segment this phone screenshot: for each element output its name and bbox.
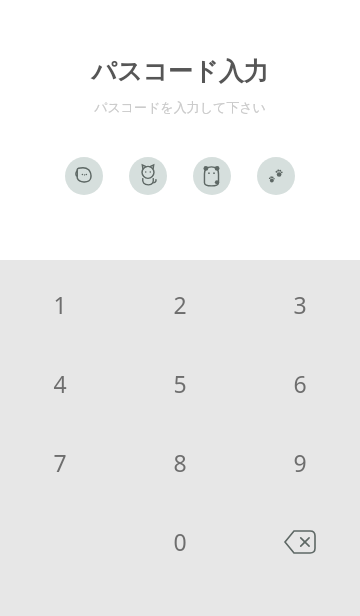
button[interactable]: 0 bbox=[120, 502, 240, 581]
button[interactable]: 8 bbox=[120, 423, 240, 502]
staticText: 6 bbox=[293, 368, 307, 399]
button[interactable]: 7 bbox=[0, 423, 120, 502]
button[interactable]: 6 bbox=[240, 344, 360, 423]
staticText: 8 bbox=[173, 447, 187, 478]
button[interactable]: 3 bbox=[240, 265, 360, 344]
button[interactable]: 9 bbox=[240, 423, 360, 502]
staticText: 9 bbox=[293, 447, 307, 478]
button[interactable]: Backspace bbox=[240, 502, 360, 581]
button[interactable]: Passcode slot 4 bbox=[257, 157, 295, 195]
button[interactable]: 2 bbox=[120, 265, 240, 344]
button[interactable]: Passcode slot 2 bbox=[129, 157, 167, 195]
staticText: 4 bbox=[53, 368, 67, 399]
staticText: パスコードを入力して下さい bbox=[94, 99, 266, 115]
button[interactable]: 1 bbox=[0, 265, 120, 344]
staticText: パスコード入力 bbox=[91, 56, 269, 87]
button[interactable]: Passcode slot 1 bbox=[65, 157, 103, 195]
staticText: 7 bbox=[53, 447, 67, 478]
staticText: 2 bbox=[173, 289, 187, 320]
staticText: 3 bbox=[293, 289, 307, 320]
staticText: 1 bbox=[53, 289, 67, 320]
staticText: 0 bbox=[173, 526, 187, 557]
button[interactable]: Passcode slot 3 bbox=[193, 157, 231, 195]
button[interactable]: 4 bbox=[0, 344, 120, 423]
button[interactable]: 5 bbox=[120, 344, 240, 423]
staticText: 5 bbox=[173, 368, 187, 399]
